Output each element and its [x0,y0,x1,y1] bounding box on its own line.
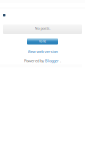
staticText: View web version [27,49,57,54]
staticText: Home [38,40,46,43]
button[interactable]: View web version [0,49,85,54]
button[interactable]: Blog home [0,9,8,17]
button[interactable]: Home [27,38,58,45]
staticText: Blogger [45,58,59,63]
button[interactable]: Blogger [45,58,59,63]
staticText: Powered by [24,58,44,63]
staticText: No posts. [34,26,50,31]
staticText: . [60,58,61,63]
